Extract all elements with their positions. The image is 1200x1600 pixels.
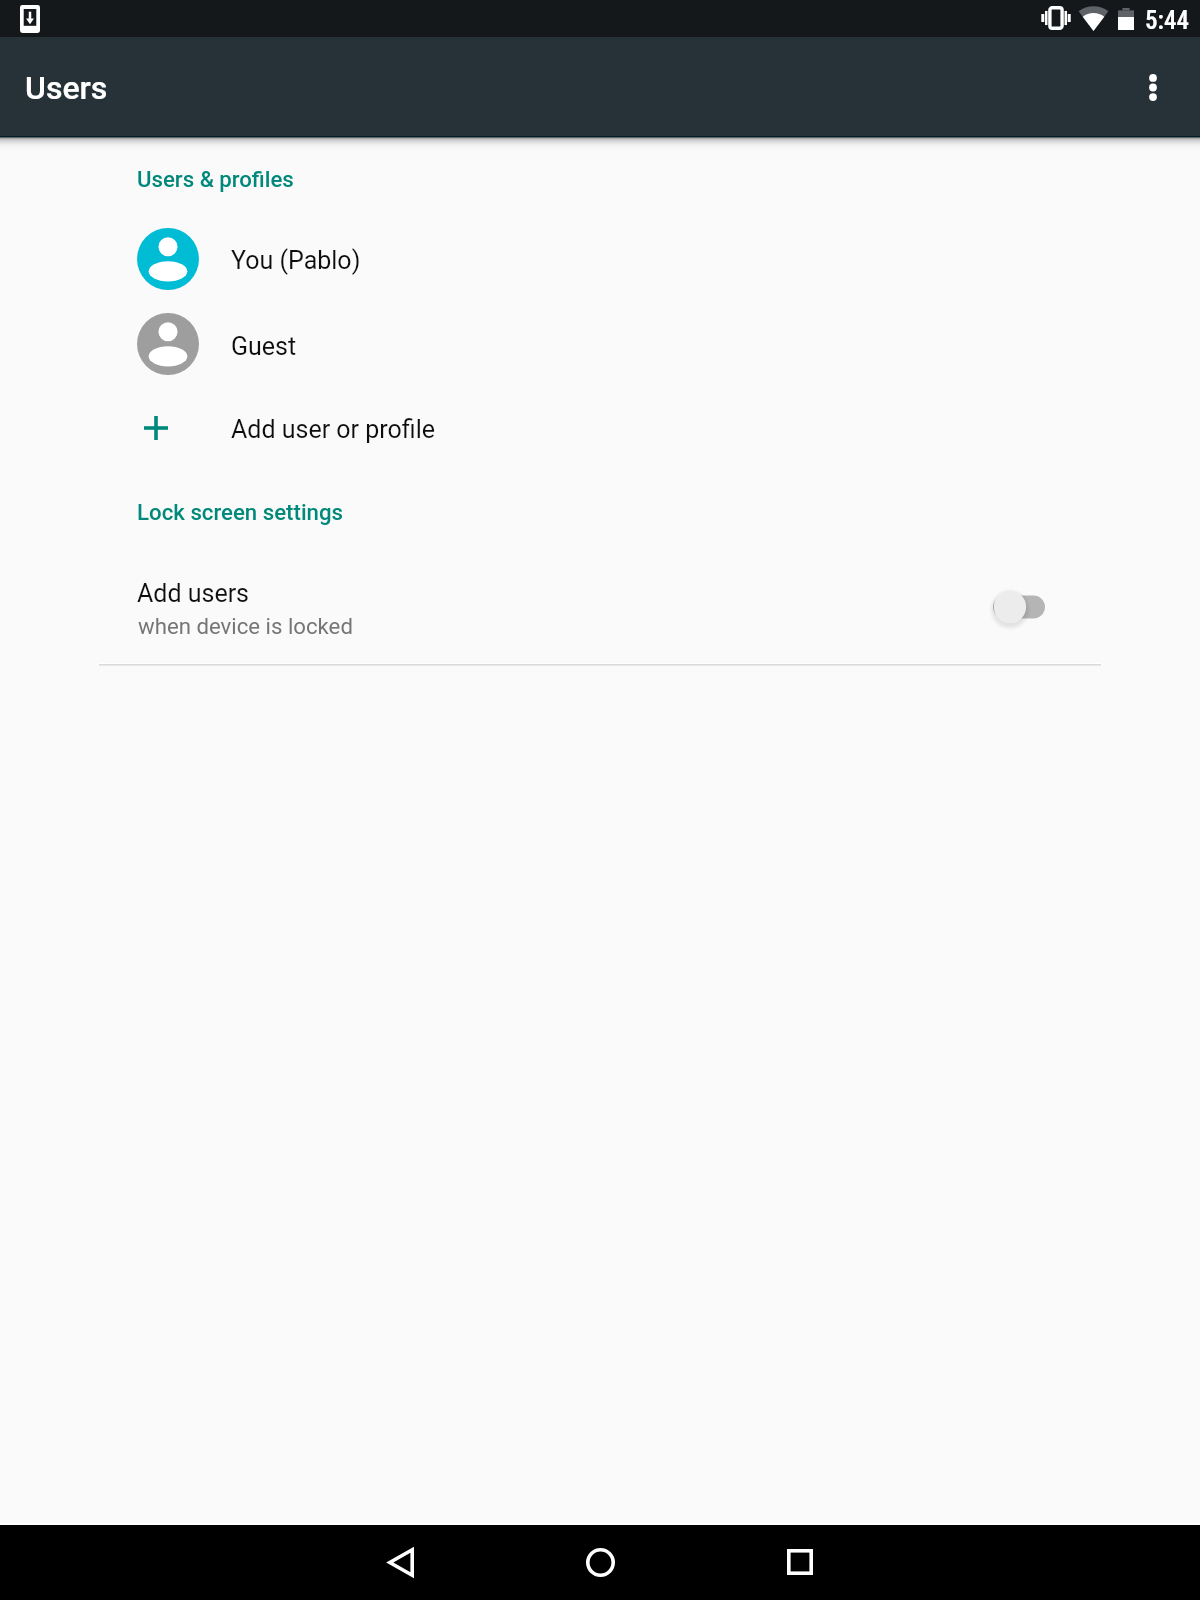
button[interactable]: Guest (0, 306, 1200, 382)
button[interactable]: More options (1105, 37, 1200, 134)
staticText: Users (25, 69, 108, 107)
staticText: Add users (137, 579, 250, 608)
button[interactable]: Add users (0, 563, 1200, 643)
button[interactable]: Add user or profile (0, 390, 1200, 466)
staticText: Lock screen settings (137, 499, 343, 525)
staticText: 5:44 (1145, 6, 1190, 35)
button[interactable]: Back (352, 1525, 448, 1599)
button[interactable]: Home (552, 1525, 648, 1599)
staticText: Users & profiles (137, 166, 294, 192)
staticText: when device is locked (138, 613, 353, 639)
button[interactable]: Recent apps (752, 1525, 848, 1599)
staticText: Add user or profile (231, 415, 435, 444)
button[interactable]: You (Pablo) (0, 221, 1200, 297)
button[interactable]: Add users when device is locked, off (975, 583, 1071, 631)
staticText: Guest (231, 332, 297, 361)
staticText: You (Pablo) (231, 246, 361, 275)
